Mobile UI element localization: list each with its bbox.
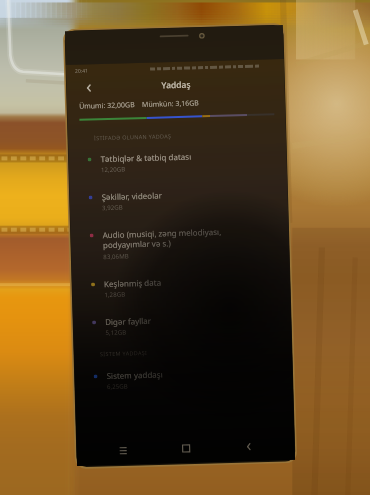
button[interactable]: Back bbox=[217, 430, 281, 462]
staticText: 1,28GB bbox=[104, 289, 125, 298]
button[interactable]: Keşlənmiş data bbox=[72, 264, 291, 308]
button[interactable]: Sistem yaddaşı bbox=[74, 356, 293, 400]
staticText: Sistem yaddaşı bbox=[106, 368, 164, 381]
button[interactable]: Şəkillər, videolar bbox=[69, 177, 288, 221]
staticText: Mümkün: 3,16GB bbox=[142, 98, 199, 110]
staticText: İSTİFADƏ OLUNAN YADDAŞ bbox=[94, 132, 172, 141]
staticText: 3,92GB bbox=[102, 203, 123, 211]
staticText: Şəkillər, videolar bbox=[101, 189, 163, 202]
staticText: Yaddaş bbox=[161, 79, 191, 91]
staticText: Ümumi: 32,00GB bbox=[79, 100, 135, 112]
button[interactable]: Digər fayllar bbox=[73, 302, 292, 346]
staticText: SİSTEM YADDAŞI bbox=[100, 349, 148, 357]
button[interactable]: Tətbiqlər & tətbiq datası bbox=[68, 139, 287, 183]
staticText: 6,25GB bbox=[107, 381, 128, 390]
staticText: 20:41 bbox=[75, 67, 88, 75]
button[interactable]: Back bbox=[80, 79, 97, 96]
staticText: Digər fayllar bbox=[105, 315, 151, 327]
button[interactable]: Home bbox=[154, 432, 218, 464]
staticText: Tətbiqlər & tətbiq datası bbox=[100, 151, 192, 164]
staticText: 12,20GB bbox=[101, 164, 126, 173]
staticText: Audio (musiqi, zəng melodiyası, podyayım… bbox=[102, 226, 222, 251]
staticText: 5,12GB bbox=[105, 327, 126, 336]
staticText: 83,06MB bbox=[103, 251, 129, 260]
button[interactable]: Audio (musiqi, zəng melodiyası, podyayım… bbox=[70, 215, 290, 270]
staticText: Keşlənmiş data bbox=[104, 276, 162, 289]
button[interactable]: Recents bbox=[90, 434, 155, 466]
